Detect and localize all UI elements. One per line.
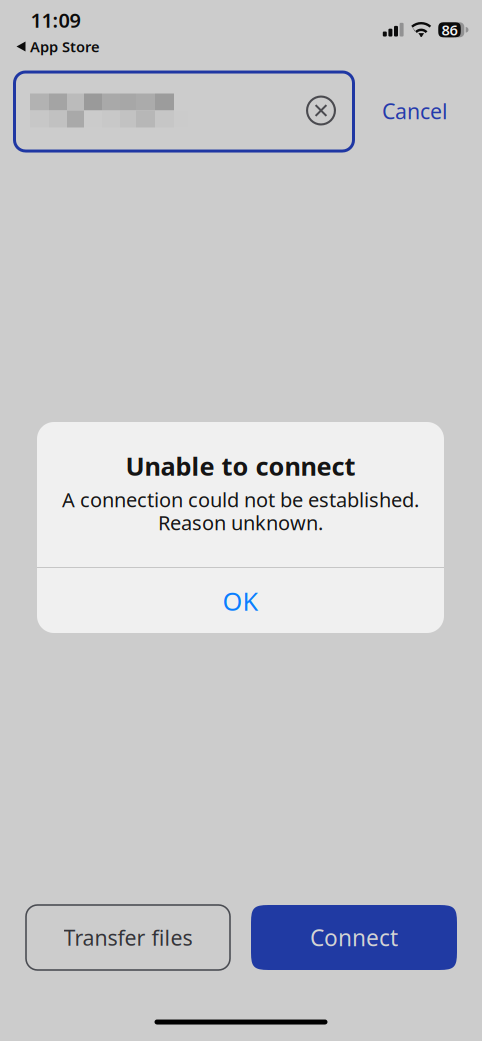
- staticText: Transfer files: [63, 923, 192, 952]
- button[interactable]: Clear text: [299, 88, 343, 132]
- button[interactable]: OK: [37, 569, 444, 633]
- staticText: 86: [442, 20, 458, 40]
- button[interactable]: Transfer files: [26, 905, 230, 970]
- staticText: Connect: [310, 922, 398, 952]
- staticText: Unable to connect: [125, 449, 355, 483]
- staticText: Reason unknown.: [158, 509, 323, 536]
- staticText: 11:09: [30, 7, 80, 33]
- staticText: OK: [222, 584, 258, 618]
- staticText: A connection could not be established.: [62, 486, 419, 513]
- staticText: Cancel: [382, 97, 448, 125]
- staticText: App Store: [30, 37, 100, 56]
- button[interactable]: Cancel: [370, 84, 460, 138]
- button[interactable]: Connect: [251, 905, 457, 970]
